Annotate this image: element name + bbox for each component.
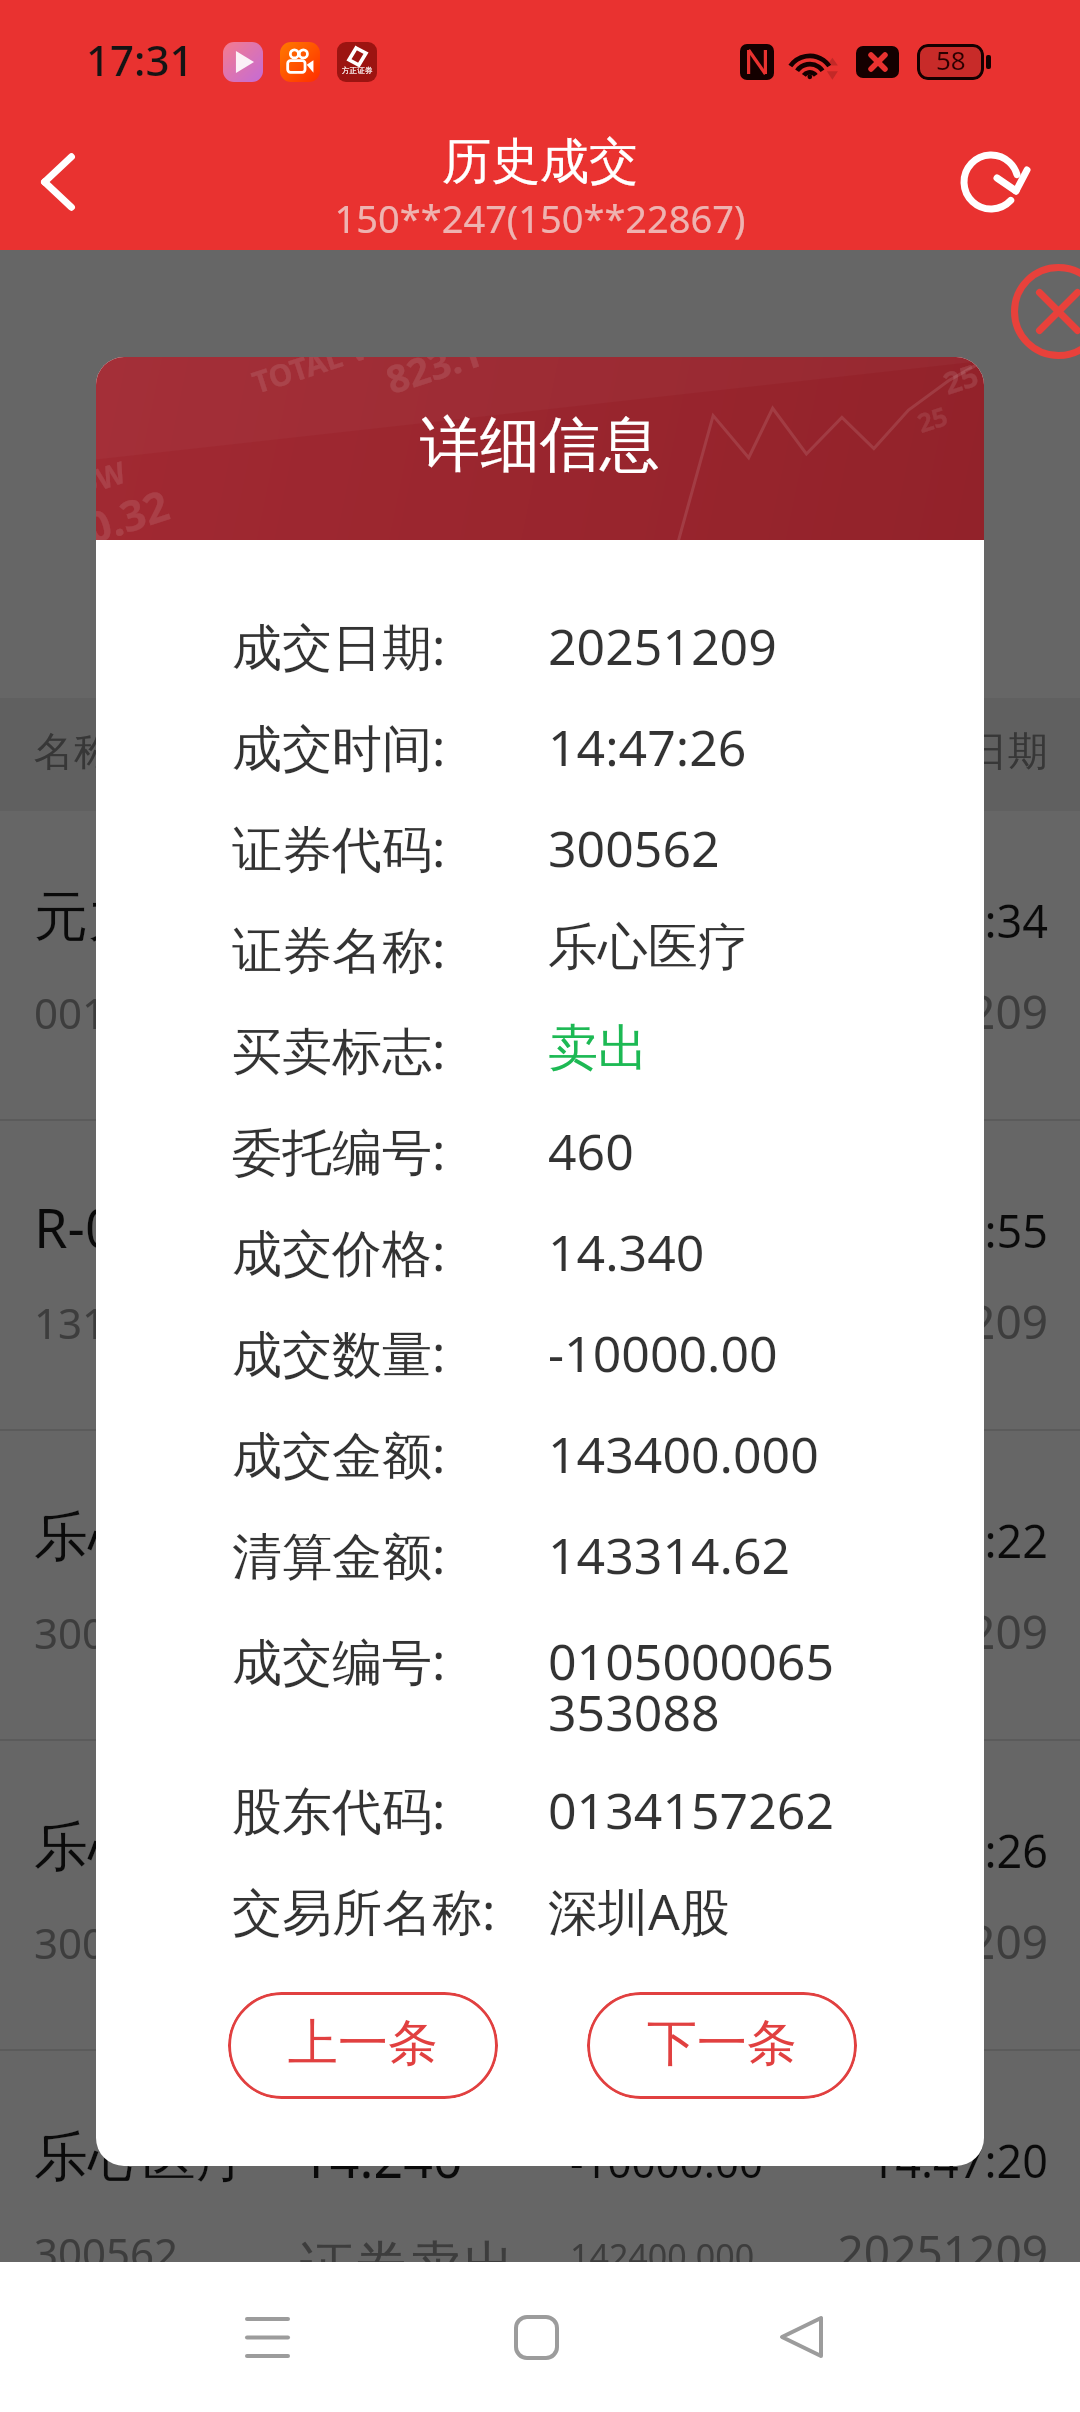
staticText: 交易所名称: [232, 1851, 496, 1956]
staticText: 14:49:34 [0, 891, 1048, 950]
staticText: 14.340 [300, 1511, 463, 1570]
staticText: 20251209 [548, 586, 777, 687]
staticText: 10000.000 [570, 1303, 735, 1349]
staticText: 成交日期: [232, 586, 446, 691]
staticText: 0105000065 353088 [548, 1640, 834, 1742]
staticText: 25 [940, 360, 983, 402]
staticText: 14.240 [300, 2131, 463, 2190]
button[interactable]: 乐心医疗 [0, 1431, 1080, 1741]
staticText: -10000.00 [570, 2131, 763, 2190]
staticText: -10000.00 [548, 1293, 778, 1394]
staticText: 股东代码: [232, 1750, 446, 1855]
button[interactable]: Home [484, 2285, 588, 2389]
staticText: 300562 [34, 2233, 179, 2279]
staticText: 25 [914, 403, 952, 439]
staticText: 证券名称: [232, 889, 446, 994]
staticText: 历史成交 [0, 141, 1080, 191]
staticText: 300562 [34, 1923, 179, 1969]
staticText: 20251209 [0, 1303, 1048, 1349]
staticText: -10000.00 [570, 1821, 763, 1880]
staticText: 14:47:26 [0, 1821, 1048, 1880]
staticText: 20251209 [0, 993, 1048, 1039]
staticText: 日期 [0, 732, 1048, 776]
button[interactable]: 乐心医疗 [0, 1741, 1080, 2051]
staticText: 20251209 [0, 2233, 1048, 2279]
staticText: 142400.000 [570, 2233, 755, 2279]
staticText: 委托编号: [232, 1091, 446, 1196]
staticText: 买卖标志: [232, 990, 446, 1095]
staticText: 823.1 [382, 357, 488, 403]
staticText: 14.340 [300, 1821, 463, 1880]
staticText: 证券卖出 [300, 993, 516, 1061]
staticText: 143400.000 [570, 1923, 755, 1969]
button[interactable]: Recent apps [215, 2285, 319, 2389]
button[interactable]: Close [1011, 264, 1080, 359]
staticText: 1.320 [300, 1201, 433, 1260]
button[interactable]: Back [6, 130, 110, 234]
staticText: 23280.000 [570, 993, 735, 1039]
staticText: 14:47:22 [0, 1511, 1048, 1570]
staticText: 001359 [34, 993, 179, 1039]
staticText: TOTAL V [249, 357, 373, 401]
staticText: 成交金额: [232, 1394, 446, 1499]
staticText: 成交数量: [232, 1293, 446, 1398]
staticText: 300562 [548, 788, 720, 889]
staticText: 成交价格: [232, 1192, 446, 1297]
staticText: 方正证券 [342, 67, 373, 75]
staticText: 乐心医疗 [548, 889, 748, 990]
staticText: 证券卖出 [300, 2233, 516, 2301]
staticText: 143400.000 [548, 1394, 819, 1495]
staticText: 卖出 [548, 990, 648, 1091]
staticText: 14.340 [548, 1192, 705, 1293]
staticText: 20251209 [0, 1923, 1048, 1969]
staticText: 乐心医疗 [34, 1821, 250, 1880]
staticText: 成交时间: [232, 687, 446, 792]
staticText: 58 [936, 48, 966, 76]
staticText: 131810 [34, 1303, 179, 1349]
staticText: 300562 [34, 1613, 179, 1659]
staticText: R-001 [34, 1201, 178, 1260]
staticText: -10000.00 [570, 1511, 763, 1570]
button[interactable]: R-001 [0, 1121, 1080, 1431]
staticText: 14:47:26 [548, 687, 747, 788]
button[interactable]: 乐心医疗 [0, 2051, 1080, 2361]
staticText: 143400.000 [570, 1613, 755, 1659]
staticText: 数量 [570, 732, 650, 776]
staticText: 460 [548, 1091, 634, 1192]
staticText: 下一条 [647, 2018, 797, 2074]
staticText: 0.32 [96, 485, 175, 553]
staticText: 深圳A股 [548, 1851, 730, 1956]
staticText: 乐心医疗 [34, 2131, 250, 2190]
staticText: 证券卖出 [300, 1613, 516, 1681]
staticText: 10000.00 [570, 1201, 750, 1260]
staticText: 元力股份 [34, 891, 250, 950]
button[interactable]: Refresh [939, 130, 1043, 234]
staticText: -1000.00 [570, 891, 739, 950]
staticText: 上一条 [288, 2018, 438, 2074]
staticText: 名称 [34, 732, 114, 776]
button[interactable]: Back [749, 2285, 853, 2389]
staticText: 详细信息 [420, 416, 660, 482]
staticText: OW [96, 458, 131, 504]
staticText: 证券卖出 [300, 1923, 516, 1991]
staticText: 23.280 [300, 891, 463, 950]
staticText: 14:47:20 [0, 2131, 1048, 2190]
button[interactable]: 下一条 [587, 1992, 857, 2099]
staticText: 乐心医疗 [34, 1511, 250, 1570]
staticText: 14:48:55 [0, 1201, 1048, 1260]
staticText: 20251209 [0, 1613, 1048, 1659]
staticText: 150**247(150**22867) [0, 200, 1080, 242]
staticText: 价格 [300, 732, 380, 776]
staticText: 17:31 [86, 40, 194, 86]
staticText: 清算金额: [232, 1495, 446, 1600]
staticText: 0134157262 [548, 1750, 834, 1851]
staticText: 证券代码: [232, 788, 446, 893]
button[interactable]: 元力股份 [0, 811, 1080, 1121]
button[interactable]: 上一条 [228, 1992, 498, 2099]
staticText: 成交编号: [232, 1640, 446, 1693]
staticText: 143314.62 [548, 1495, 791, 1596]
staticText: 质押式回 [300, 1303, 516, 1371]
